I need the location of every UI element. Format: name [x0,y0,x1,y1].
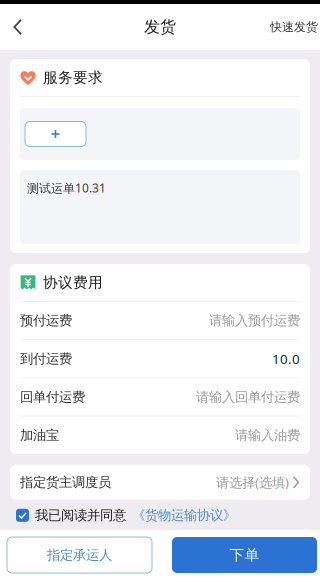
staticText: 10.0 [272,350,300,368]
button[interactable]: 下单 [172,537,317,573]
staticText: 协议费用 [43,273,103,291]
staticText: 预付运费 [20,312,72,329]
staticText: 加油宝 [20,427,59,443]
staticText: 指定货主调度员 [20,474,111,490]
staticText: 请输入回单付运费 [196,389,300,405]
staticText: 服务要求 [43,68,103,86]
button[interactable]: 返回 [0,4,35,50]
staticText: 发货 [144,17,176,37]
staticText: 快速发货 [270,20,318,34]
staticText: 请输入预付运费 [209,312,300,329]
staticText: 测试运单10.31 [27,180,106,196]
button[interactable]: 指定承运人 [7,537,152,573]
button[interactable]: 我已阅读并同意 [0,500,320,531]
staticText: 我已阅读并同意 [35,507,126,523]
button[interactable]: 快速发货 [270,4,320,50]
staticText: 《货物运输协议》 [132,507,236,523]
staticText: 请选择(选填) [216,473,289,491]
staticText: 请输入油费 [235,427,300,443]
staticText: 到付运费 [20,351,72,367]
staticText: 指定承运人 [47,547,112,563]
button[interactable]: 添加服务要求 [25,121,86,146]
staticText: 下单 [229,546,259,564]
button[interactable]: 指定货主调度员 [10,465,310,500]
staticText: 回单付运费 [20,389,85,405]
